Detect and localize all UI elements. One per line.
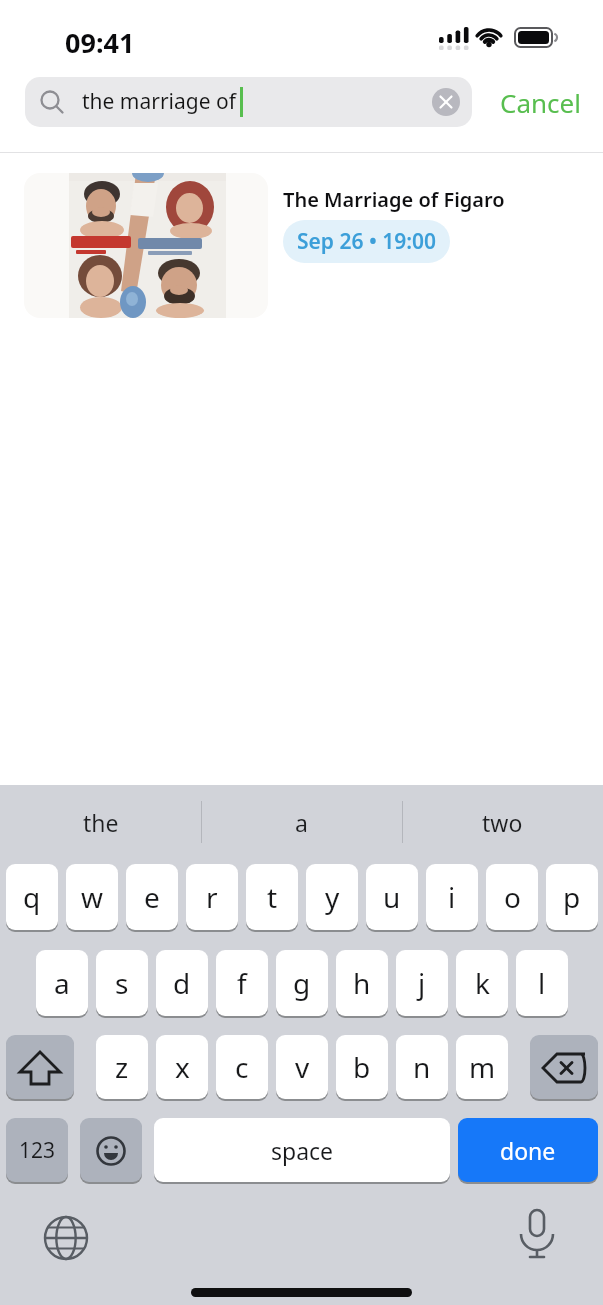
button[interactable]: n: [396, 1035, 448, 1101]
button[interactable]: m: [456, 1035, 508, 1101]
staticText: q: [23, 878, 41, 916]
button[interactable]: w: [66, 864, 118, 932]
button[interactable]: d: [156, 950, 208, 1018]
staticText: w: [81, 878, 104, 916]
button[interactable]: z: [96, 1035, 148, 1101]
button[interactable]: v: [276, 1035, 328, 1101]
staticText: d: [173, 964, 191, 1002]
button[interactable]: f: [216, 950, 268, 1018]
staticText: p: [563, 878, 581, 916]
button[interactable]: the marriage of: [25, 77, 472, 127]
button[interactable]: t: [246, 864, 298, 932]
staticText: the marriage of: [82, 87, 236, 116]
staticText: the: [83, 807, 119, 838]
staticText: Cancel: [500, 85, 581, 120]
button[interactable]: o: [486, 864, 538, 932]
button[interactable]: [432, 88, 460, 116]
button[interactable]: a: [201, 795, 402, 850]
button[interactable]: Sep 26 • 19:00: [283, 220, 450, 263]
button[interactable]: [511, 1208, 563, 1260]
staticText: v: [295, 1048, 310, 1086]
staticText: r: [206, 878, 218, 916]
staticText: done: [500, 1135, 556, 1166]
button[interactable]: j: [396, 950, 448, 1018]
button[interactable]: 123: [6, 1118, 68, 1184]
button[interactable]: c: [216, 1035, 268, 1101]
staticText: g: [293, 964, 311, 1002]
staticText: t: [267, 878, 278, 916]
staticText: a: [295, 807, 308, 838]
button[interactable]: e: [126, 864, 178, 932]
staticText: 123: [19, 1136, 56, 1165]
button[interactable]: Cancel: [490, 83, 590, 121]
button[interactable]: [40, 1212, 92, 1264]
button[interactable]: y: [306, 864, 358, 932]
button[interactable]: space: [154, 1118, 450, 1184]
staticText: b: [353, 1048, 371, 1086]
staticText: c: [235, 1048, 249, 1086]
button[interactable]: [80, 1118, 142, 1184]
button[interactable]: i: [426, 864, 478, 932]
staticText: f: [237, 964, 247, 1002]
staticText: h: [353, 964, 371, 1002]
staticText: l: [538, 964, 546, 1002]
staticText: x: [175, 1048, 190, 1086]
staticText: j: [418, 964, 426, 1002]
button[interactable]: x: [156, 1035, 208, 1101]
button[interactable]: g: [276, 950, 328, 1018]
staticText: The Marriage of Figaro: [283, 186, 505, 213]
button[interactable]: [530, 1035, 598, 1101]
staticText: e: [144, 878, 160, 916]
button[interactable]: done: [458, 1118, 598, 1184]
staticText: space: [271, 1135, 334, 1166]
button[interactable]: [6, 1035, 74, 1101]
button[interactable]: h: [336, 950, 388, 1018]
staticText: k: [475, 964, 490, 1002]
staticText: u: [383, 878, 401, 916]
button[interactable]: r: [186, 864, 238, 932]
button[interactable]: [24, 173, 268, 318]
staticText: y: [325, 878, 340, 916]
staticText: a: [54, 964, 70, 1002]
staticText: s: [115, 964, 129, 1002]
button[interactable]: p: [546, 864, 598, 932]
button[interactable]: b: [336, 1035, 388, 1101]
staticText: o: [504, 878, 521, 916]
button[interactable]: a: [36, 950, 88, 1018]
staticText: Sep 26 • 19:00: [297, 227, 437, 256]
staticText: 09:41: [65, 24, 135, 61]
button[interactable]: u: [366, 864, 418, 932]
button[interactable]: two: [402, 795, 603, 850]
button[interactable]: l: [516, 950, 568, 1018]
staticText: i: [448, 878, 456, 916]
staticText: n: [413, 1048, 431, 1086]
button[interactable]: q: [6, 864, 58, 932]
staticText: z: [115, 1048, 129, 1086]
button[interactable]: s: [96, 950, 148, 1018]
button[interactable]: k: [456, 950, 508, 1018]
staticText: m: [469, 1048, 496, 1086]
button[interactable]: the: [0, 795, 201, 850]
staticText: two: [482, 807, 523, 838]
